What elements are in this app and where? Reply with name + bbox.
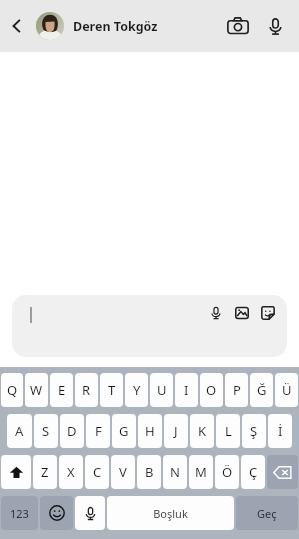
button[interactable]: Ü <box>275 373 298 407</box>
button[interactable]: W <box>25 373 48 407</box>
button[interactable]: B <box>137 455 161 489</box>
staticText: K <box>198 422 207 440</box>
staticText: U <box>157 381 167 399</box>
button[interactable]: S <box>34 414 58 448</box>
staticText: A <box>15 422 24 440</box>
button[interactable]: K <box>190 414 214 448</box>
staticText: N <box>170 463 180 481</box>
button[interactable]: 123 <box>1 496 38 530</box>
staticText: T <box>108 381 116 399</box>
button[interactable]: A <box>7 414 32 448</box>
staticText: 123 <box>10 506 29 521</box>
button[interactable]: Camera <box>219 7 257 45</box>
button[interactable]: X <box>59 455 83 489</box>
button[interactable]: F <box>86 414 110 448</box>
button[interactable]: L <box>216 414 240 448</box>
staticText: J <box>174 422 178 440</box>
button[interactable]: O <box>200 373 223 407</box>
button[interactable]: R <box>75 373 98 407</box>
button[interactable]: P <box>225 373 248 407</box>
button[interactable]: İ <box>268 414 292 448</box>
button[interactable]: Emoji <box>40 496 73 530</box>
button[interactable]: U <box>150 373 173 407</box>
staticText: Deren Tokgöz <box>73 18 158 35</box>
staticText: H <box>145 422 155 440</box>
staticText: W <box>30 381 43 399</box>
button[interactable]: Z <box>33 455 57 489</box>
button[interactable]: Shift <box>1 455 31 489</box>
staticText: X <box>67 463 75 481</box>
button[interactable]: D <box>60 414 84 448</box>
button[interactable]: Profile photo <box>36 12 64 40</box>
staticText: I <box>184 381 189 399</box>
staticText: Z <box>41 463 49 481</box>
staticText: D <box>67 422 77 440</box>
button[interactable]: E <box>50 373 73 407</box>
button[interactable]: Ç <box>241 455 265 489</box>
staticText: R <box>82 381 91 399</box>
staticText: Geç <box>257 506 277 521</box>
button[interactable]: H <box>138 414 162 448</box>
button[interactable]: T <box>100 373 123 407</box>
button[interactable]: C <box>85 455 109 489</box>
staticText: F <box>95 422 102 440</box>
button[interactable]: G <box>112 414 136 448</box>
staticText: G <box>119 422 129 440</box>
button[interactable]: Back <box>0 9 34 43</box>
button[interactable]: Voice input <box>75 496 105 530</box>
staticText: Ö <box>222 463 233 481</box>
staticText: Ğ <box>257 381 267 399</box>
staticText: Ş <box>250 422 258 440</box>
staticText: E <box>58 381 66 399</box>
staticText: M <box>195 463 207 481</box>
button[interactable]: Record voice <box>205 302 227 324</box>
staticText: V <box>119 463 127 481</box>
staticText: Ç <box>249 463 258 481</box>
button[interactable]: Boşluk <box>107 496 234 530</box>
button[interactable]: Ş <box>242 414 266 448</box>
button[interactable]: I <box>175 373 198 407</box>
staticText: Y <box>133 381 141 399</box>
staticText: Boşluk <box>153 506 188 521</box>
button[interactable]: Stickers <box>257 302 279 324</box>
staticText: B <box>145 463 154 481</box>
staticText: Q <box>7 381 18 399</box>
staticText: O <box>206 381 217 399</box>
button[interactable]: V <box>111 455 135 489</box>
button[interactable]: Backspace <box>267 455 298 489</box>
button[interactable]: Ö <box>215 455 239 489</box>
button[interactable]: Y <box>125 373 148 407</box>
staticText: S <box>42 422 50 440</box>
staticText: Ü <box>282 381 292 399</box>
button[interactable]: Geç <box>236 496 298 530</box>
button[interactable]: Voice message <box>257 8 293 44</box>
button[interactable]: Ğ <box>250 373 273 407</box>
button[interactable]: N <box>163 455 187 489</box>
button[interactable]: Q <box>1 373 23 407</box>
button[interactable]: J <box>164 414 188 448</box>
button[interactable]: M <box>189 455 213 489</box>
staticText: L <box>225 422 232 440</box>
button[interactable]: Gallery <box>231 302 253 324</box>
staticText: P <box>233 381 241 399</box>
staticText: İ <box>278 422 283 440</box>
button[interactable]: Record voice <box>12 295 287 357</box>
staticText: C <box>93 463 102 481</box>
